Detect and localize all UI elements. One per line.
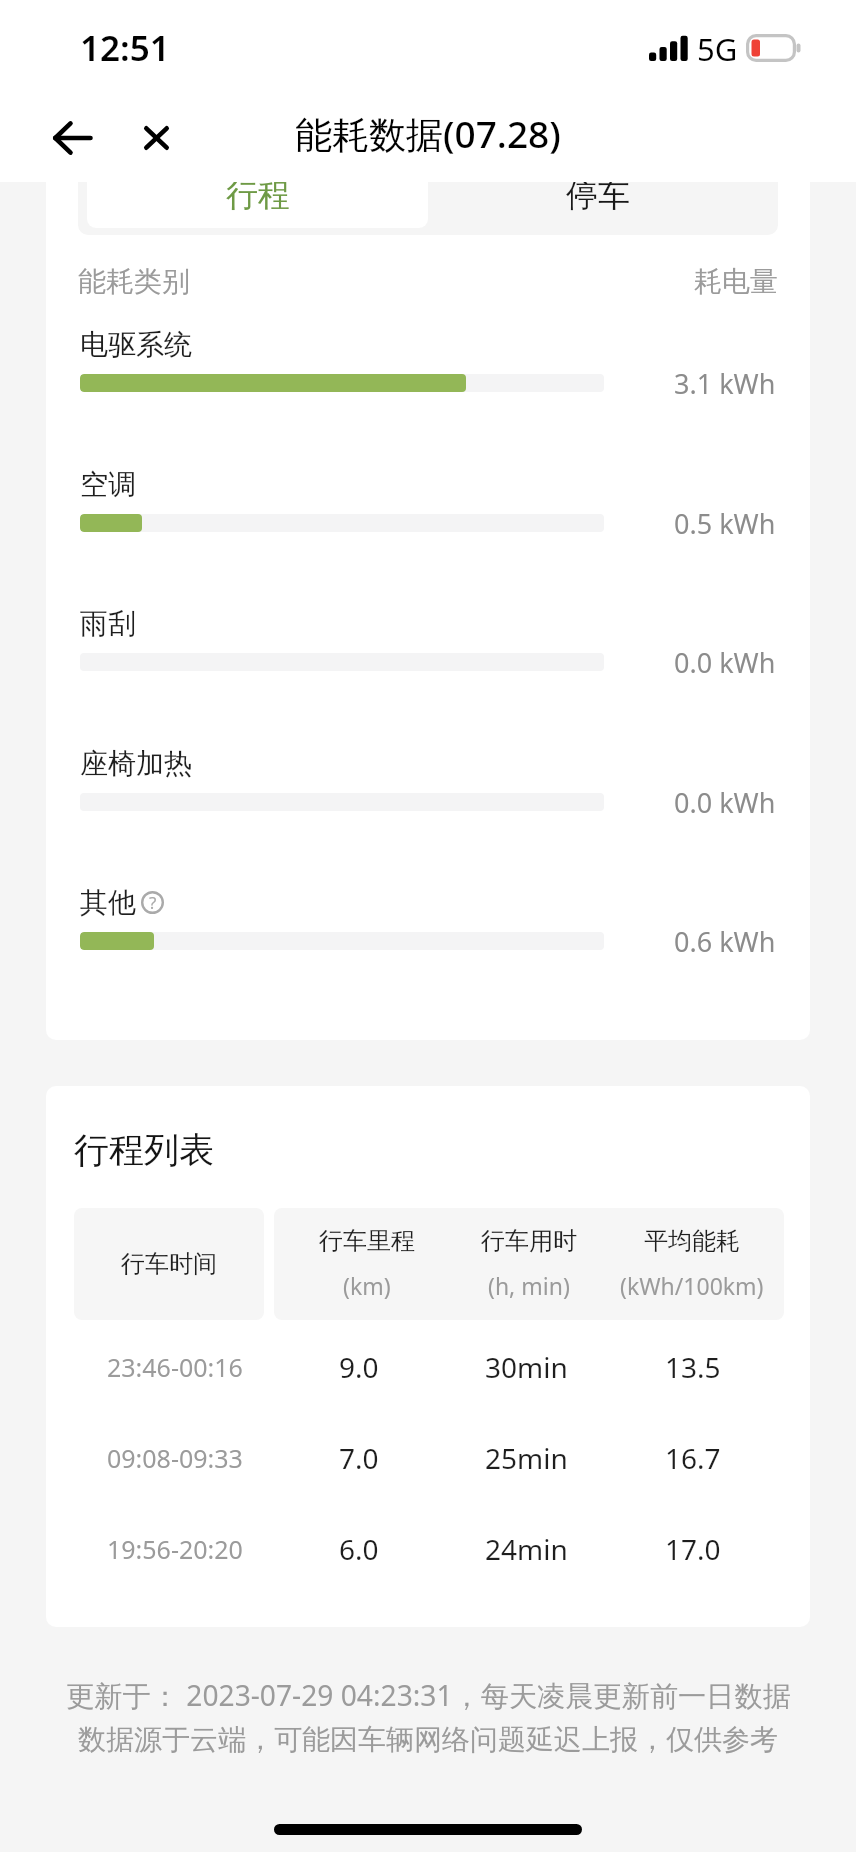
staticText: 能耗类别 xyxy=(78,264,190,299)
button[interactable]: 23:46-00:16 xyxy=(46,1331,810,1403)
staticText: 0.5 kWh xyxy=(674,505,776,541)
staticText: 平均能耗 xyxy=(644,1226,740,1256)
staticText: 12:51 xyxy=(80,24,170,72)
button[interactable]: 行程 xyxy=(87,182,428,228)
staticText: 行车用时 xyxy=(481,1226,577,1256)
staticText: (kWh/100km) xyxy=(620,1270,764,1301)
staticText: 24min xyxy=(485,1530,568,1568)
staticText: 电驱系统 xyxy=(80,327,192,362)
staticText: (h, min) xyxy=(488,1270,570,1301)
button[interactable]: 09:08-09:33 xyxy=(46,1422,810,1494)
staticText: 行车里程 xyxy=(319,1226,415,1256)
staticText: 6.0 xyxy=(339,1530,379,1568)
staticText: 能耗数据(07.28) xyxy=(295,108,561,159)
staticText: 0.6 kWh xyxy=(674,923,776,959)
staticText: 停车 xyxy=(566,182,630,215)
staticText: 9.0 xyxy=(339,1348,379,1386)
staticText: 13.5 xyxy=(665,1348,721,1386)
staticText: 17.0 xyxy=(665,1530,721,1568)
staticText: 19:56-20:20 xyxy=(107,1532,243,1566)
staticText: 5G xyxy=(697,28,738,70)
staticText: 行程列表 xyxy=(74,1128,214,1172)
staticText: 其他 xyxy=(80,885,136,920)
staticText: 雨刮 xyxy=(80,606,136,641)
staticText: 座椅加热 xyxy=(80,746,192,781)
staticText: (km) xyxy=(343,1270,391,1301)
staticText: 空调 xyxy=(80,467,136,502)
staticText: 30min xyxy=(485,1348,568,1386)
staticText: 0.0 kWh xyxy=(674,644,776,680)
staticText: 数据源于云端，可能因车辆网络问题延迟上报，仅供参考 xyxy=(78,1722,778,1757)
staticText: 23:46-00:16 xyxy=(107,1350,243,1384)
staticText: 行车时间 xyxy=(121,1249,217,1279)
staticText: 16.7 xyxy=(665,1439,721,1477)
button[interactable]: Close xyxy=(114,96,198,180)
staticText: 7.0 xyxy=(339,1439,379,1477)
button[interactable]: Back xyxy=(30,96,114,180)
staticText: 行程 xyxy=(226,182,290,215)
button[interactable]: 停车 xyxy=(423,182,773,235)
staticText: ? xyxy=(149,891,157,914)
staticText: 0.0 kWh xyxy=(674,784,776,820)
staticText: 耗电量 xyxy=(694,264,778,299)
button[interactable]: 19:56-20:20 xyxy=(46,1513,810,1585)
staticText: 25min xyxy=(485,1439,568,1477)
staticText: 3.1 kWh xyxy=(674,365,776,401)
staticText: 09:08-09:33 xyxy=(107,1441,243,1475)
staticText: 更新于： 2023-07-29 04:23:31，每天凌晨更新前一日数据 xyxy=(66,1676,791,1715)
